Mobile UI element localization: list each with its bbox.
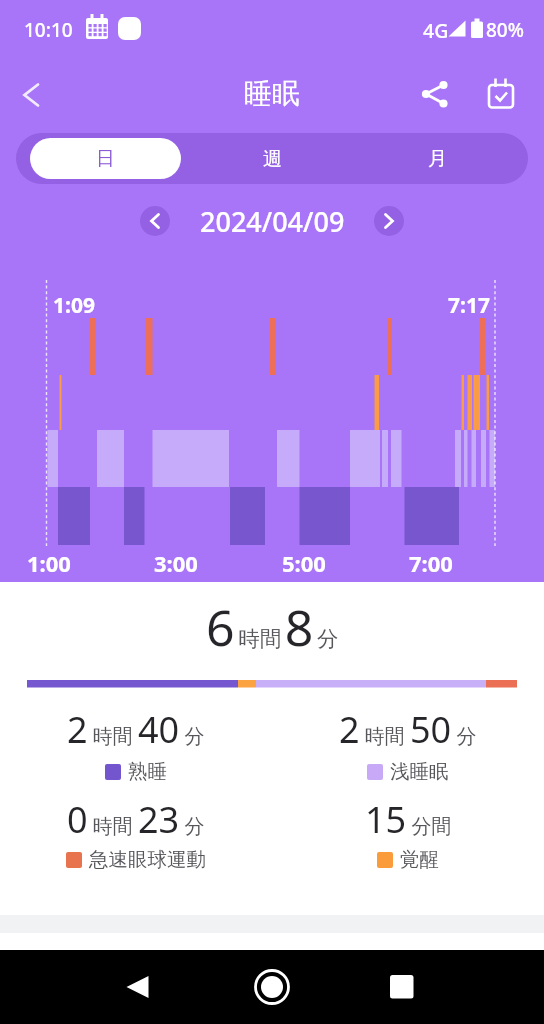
button[interactable] — [414, 72, 458, 116]
button[interactable]: 2024/04/09 — [0, 203, 544, 240]
button[interactable]: 日 — [30, 138, 181, 179]
button[interactable] — [212, 950, 332, 1024]
button[interactable] — [342, 950, 462, 1024]
staticText: 7:00 — [409, 548, 453, 578]
staticText: 15 分間 — [365, 795, 452, 844]
staticText: 熟睡 — [128, 759, 167, 784]
staticText: 月 — [428, 147, 447, 171]
staticText: 週 — [263, 147, 282, 171]
staticText: 睡眠 — [244, 76, 300, 111]
staticText: 2024/04/09 — [200, 203, 345, 240]
staticText: 7:17 — [448, 291, 490, 320]
button[interactable]: 週 — [192, 133, 352, 184]
staticText: 5:00 — [282, 548, 326, 578]
button[interactable] — [8, 75, 52, 115]
staticText: 0 時間 23 分 — [67, 795, 205, 844]
button[interactable] — [374, 206, 404, 236]
staticText: 急速眼球運動 — [89, 847, 206, 872]
button[interactable] — [77, 950, 198, 1024]
staticText: 3:00 — [154, 548, 198, 578]
staticText: 1:00 — [27, 548, 71, 578]
button[interactable] — [140, 206, 170, 236]
staticText: 2 時間 40 分 — [67, 705, 205, 754]
button[interactable] — [480, 71, 524, 117]
staticText: 80% — [486, 17, 524, 43]
staticText: 覚醒 — [400, 847, 439, 872]
staticText: 10:10 — [24, 17, 73, 43]
staticText: 1:09 — [53, 291, 95, 320]
staticText: 日 — [96, 147, 115, 171]
staticText: 2 時間 50 分 — [339, 705, 477, 754]
staticText: 4G — [423, 17, 449, 44]
button[interactable]: 月 — [357, 133, 517, 184]
staticText: 浅睡眠 — [390, 759, 449, 784]
staticText: 6 時間 8 分 — [206, 593, 339, 661]
